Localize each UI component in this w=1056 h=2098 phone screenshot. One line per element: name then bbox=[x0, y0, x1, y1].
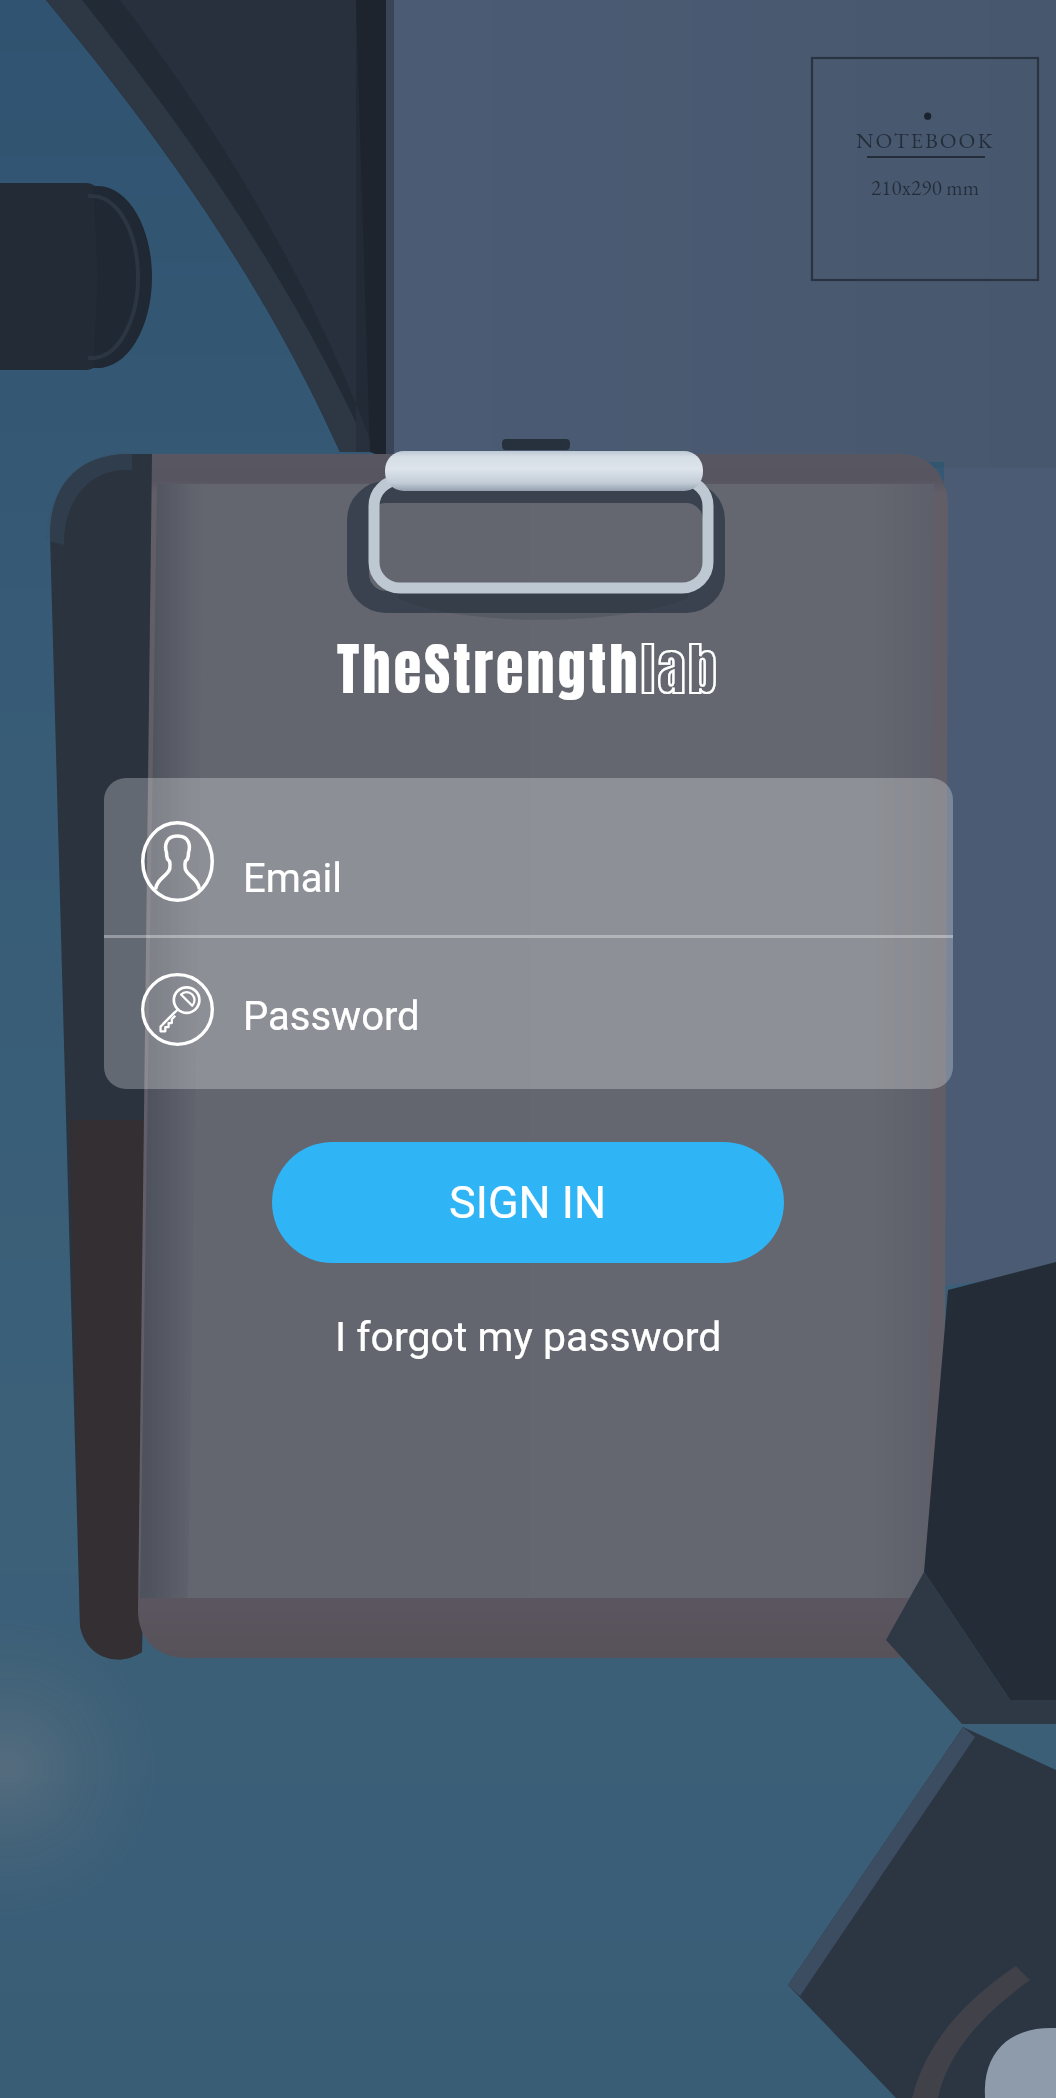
staticText: SIGN IN bbox=[449, 1176, 607, 1229]
staticText: 210x290 mm bbox=[871, 174, 980, 201]
staticText: Password bbox=[243, 993, 420, 1040]
staticText: TheStrength bbox=[337, 627, 641, 711]
staticText: lab bbox=[641, 627, 720, 711]
staticText: I forgot my password bbox=[335, 1313, 722, 1361]
button[interactable]: SIGN IN bbox=[272, 1142, 784, 1263]
button[interactable]: Email bbox=[104, 778, 953, 935]
staticText: Email bbox=[243, 855, 343, 902]
button[interactable]: I forgot my password bbox=[0, 1300, 1056, 1374]
button[interactable]: Password bbox=[104, 938, 953, 1089]
staticText: NOTEBOOK bbox=[856, 126, 995, 155]
